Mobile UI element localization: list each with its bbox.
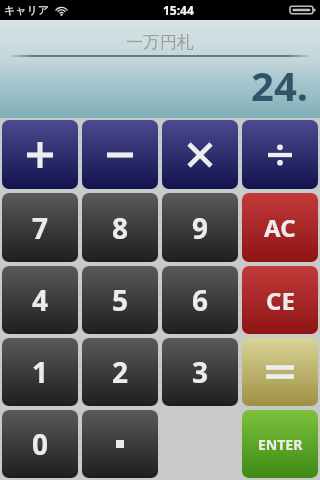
staticText: 2: [112, 353, 129, 391]
button[interactable]: ENTER: [242, 410, 318, 478]
staticText: AC: [264, 211, 296, 244]
button[interactable]: AC: [242, 193, 318, 262]
button[interactable]: Decimal point: [82, 410, 158, 478]
button[interactable]: 6: [162, 266, 238, 334]
staticText: CE: [266, 284, 295, 317]
staticText: 15:44: [163, 2, 194, 18]
staticText: 7: [32, 209, 49, 247]
button[interactable]: 9: [162, 193, 238, 262]
button[interactable]: 1: [2, 338, 78, 406]
staticText: キャリア: [4, 3, 50, 17]
button[interactable]: Multiply: [162, 120, 238, 189]
staticText: 24.: [251, 58, 308, 112]
staticText: 0: [32, 425, 49, 463]
staticText: 9: [192, 209, 209, 247]
button[interactable]: Divide: [242, 120, 318, 189]
button[interactable]: 7: [2, 193, 78, 262]
button[interactable]: 0: [2, 410, 78, 478]
button[interactable]: 4: [2, 266, 78, 334]
button[interactable]: Minus: [82, 120, 158, 189]
staticText: ENTER: [258, 435, 303, 454]
button[interactable]: 3: [162, 338, 238, 406]
staticText: 8: [112, 209, 129, 247]
button[interactable]: 2: [82, 338, 158, 406]
button[interactable]: 5: [82, 266, 158, 334]
staticText: 3: [192, 353, 209, 391]
staticText: 6: [192, 281, 209, 319]
button[interactable]: 8: [82, 193, 158, 262]
button[interactable]: Equals: [242, 338, 318, 406]
staticText: 4: [32, 281, 49, 319]
staticText: 一万円札: [0, 32, 320, 53]
staticText: 5: [112, 281, 129, 319]
staticText: 1: [32, 353, 49, 391]
button[interactable]: CE: [242, 266, 318, 334]
button[interactable]: Plus: [2, 120, 78, 189]
